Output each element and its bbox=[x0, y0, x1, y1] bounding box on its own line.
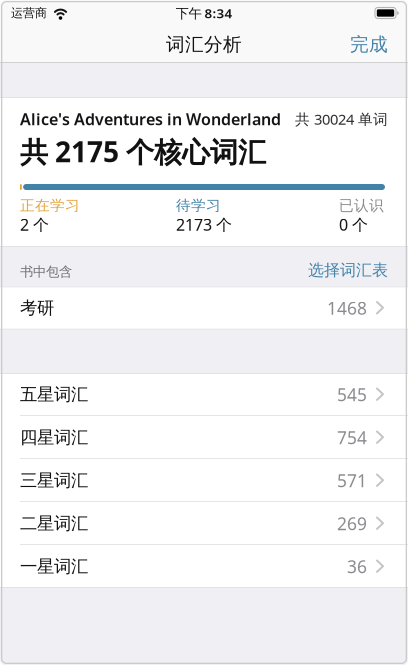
staticText: 36 bbox=[347, 555, 367, 578]
staticText: 完成 bbox=[350, 33, 388, 56]
staticText: 待学习 bbox=[176, 196, 221, 214]
staticText: 571 bbox=[337, 469, 367, 492]
staticText: 共 30024 单词 bbox=[295, 109, 388, 129]
button[interactable]: 二星词汇 bbox=[0, 502, 408, 545]
button[interactable]: 五星词汇 bbox=[0, 373, 408, 416]
button[interactable]: 一星词汇 bbox=[0, 545, 408, 588]
staticText: 选择词汇表 bbox=[308, 260, 388, 280]
button[interactable]: 完成 bbox=[350, 33, 408, 56]
staticText: 2173 个 bbox=[176, 214, 232, 235]
staticText: 运营商 bbox=[11, 6, 47, 20]
button[interactable]: 四星词汇 bbox=[0, 416, 408, 459]
button[interactable]: 三星词汇 bbox=[0, 459, 408, 502]
staticText: 书中包含 bbox=[20, 264, 72, 280]
staticText: Alice's Adventures in Wonderland bbox=[20, 108, 281, 130]
staticText: 三星词汇 bbox=[20, 470, 88, 491]
staticText: 正在学习 bbox=[20, 196, 80, 214]
staticText: 五星词汇 bbox=[20, 384, 88, 405]
staticText: 共 2175 个核心词汇 bbox=[20, 133, 266, 170]
button[interactable]: 选择词汇表 bbox=[308, 260, 388, 280]
staticText: 1468 bbox=[327, 296, 367, 319]
staticText: 二星词汇 bbox=[20, 513, 88, 534]
staticText: 下午 8:34 bbox=[175, 4, 232, 22]
staticText: 545 bbox=[337, 383, 367, 406]
staticText: 2 个 bbox=[20, 214, 49, 235]
staticText: 词汇分析 bbox=[166, 33, 242, 56]
button[interactable]: 考研 bbox=[0, 286, 408, 329]
staticText: 0 个 bbox=[339, 214, 368, 235]
staticText: 一星词汇 bbox=[20, 556, 88, 577]
staticText: 269 bbox=[337, 512, 367, 535]
staticText: 四星词汇 bbox=[20, 427, 88, 448]
staticText: 考研 bbox=[20, 297, 54, 319]
staticText: 754 bbox=[337, 426, 367, 449]
staticText: 已认识 bbox=[339, 196, 384, 214]
